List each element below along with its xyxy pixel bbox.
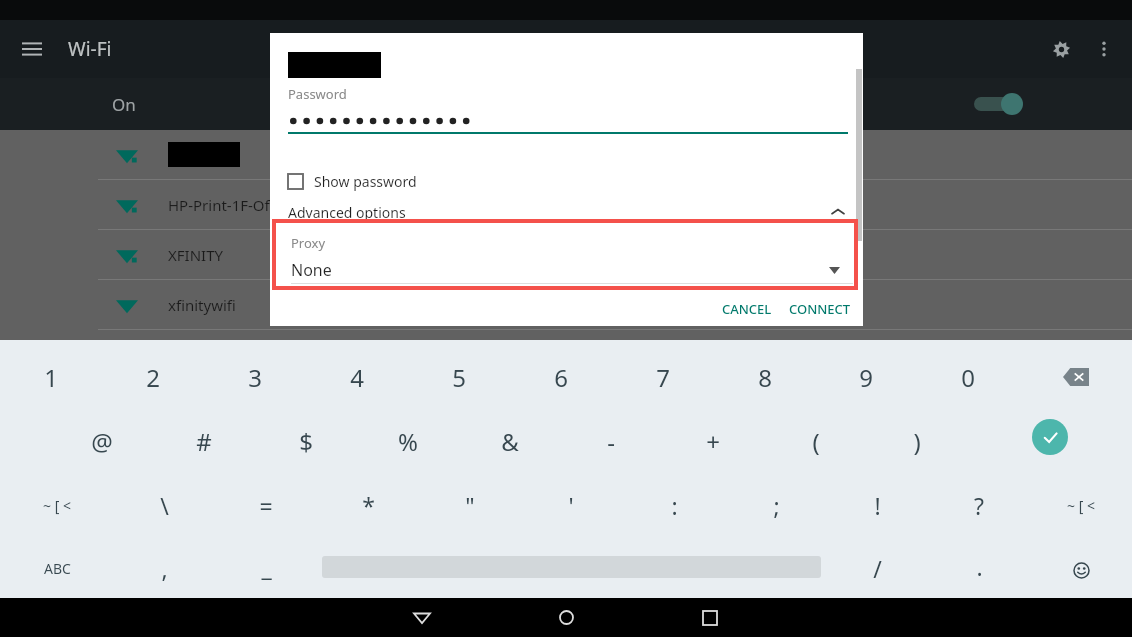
button[interactable]: )	[873, 415, 961, 467]
staticText: ~ [ <	[1067, 496, 1095, 515]
staticText: HP-Print-1F-Offi	[168, 195, 279, 215]
staticText: \	[160, 490, 169, 521]
staticText: 7	[656, 361, 670, 394]
staticText: '	[568, 490, 574, 521]
staticText: $	[299, 425, 313, 458]
staticText: *	[362, 490, 375, 521]
staticText: 0	[961, 361, 975, 394]
button[interactable]: 4	[313, 351, 401, 403]
button[interactable]: :	[630, 479, 718, 531]
button[interactable]: Settings	[1041, 29, 1081, 69]
button[interactable]: Back	[400, 598, 444, 637]
staticText: xfinitywifi	[168, 295, 236, 315]
button[interactable]: @	[58, 415, 146, 467]
staticText: 3	[248, 361, 262, 394]
button[interactable]: 3	[211, 351, 299, 403]
button[interactable]: 0	[924, 351, 1012, 403]
staticText: @	[91, 425, 113, 458]
button[interactable]: ABC	[13, 542, 101, 594]
button[interactable]: CONNECT	[783, 294, 857, 324]
staticText: Wi-Fi	[68, 36, 112, 62]
staticText: Password	[288, 85, 347, 103]
staticText: .	[976, 551, 983, 582]
button[interactable]: 8	[721, 351, 809, 403]
staticText: )	[913, 425, 921, 458]
button[interactable]: ,	[120, 542, 208, 594]
staticText: ABC	[44, 559, 71, 578]
button[interactable]: Enter	[1032, 419, 1068, 455]
staticText: 5	[452, 361, 466, 394]
button[interactable]: Home	[544, 598, 588, 637]
button[interactable]: CANCEL	[713, 294, 781, 324]
staticText: CONNECT	[789, 300, 851, 318]
button[interactable]: 6	[517, 351, 605, 403]
staticText: &	[501, 425, 519, 458]
button[interactable]: None	[291, 257, 840, 283]
button[interactable]: ~ [ <	[13, 479, 101, 531]
staticText: "	[465, 490, 475, 521]
button[interactable]: ~ [ <	[1037, 479, 1125, 531]
button[interactable]: HP-Print-1F-Offi	[0, 180, 1132, 229]
button[interactable]: 1	[7, 351, 95, 403]
button[interactable]: /	[833, 542, 921, 594]
staticText: -	[607, 425, 615, 458]
staticText: %	[398, 425, 418, 458]
button[interactable]: xfinitywifi	[0, 280, 1132, 329]
staticText: Show password	[314, 172, 417, 191]
staticText: /	[873, 553, 882, 584]
button[interactable]: Recent apps	[688, 598, 732, 637]
staticText: 2	[146, 361, 160, 394]
staticText: #	[196, 425, 212, 458]
staticText: =	[259, 490, 273, 521]
button[interactable]: Emoji	[1062, 554, 1100, 586]
button[interactable]: Advanced options	[288, 199, 845, 225]
button[interactable]: Navigation drawer	[14, 31, 50, 67]
button[interactable]: More options	[1084, 29, 1124, 69]
button[interactable]: =	[222, 479, 310, 531]
button[interactable]	[0, 130, 1132, 179]
button[interactable]: "	[426, 479, 514, 531]
button[interactable]: XFINITY	[0, 230, 1132, 279]
button[interactable]: &	[466, 415, 554, 467]
button[interactable]: Show password	[288, 167, 417, 195]
staticText: ;	[773, 490, 780, 521]
staticText: 1	[44, 361, 58, 394]
button[interactable]: #	[160, 415, 248, 467]
staticText: ?	[974, 490, 984, 521]
staticText: :	[671, 490, 678, 521]
staticText: None	[291, 259, 332, 281]
button[interactable]: .	[935, 540, 1023, 592]
button[interactable]: !	[833, 479, 921, 531]
button[interactable]: %	[364, 415, 452, 467]
staticText: 9	[859, 361, 873, 394]
button[interactable]: Wi-Fi toggle	[972, 87, 1024, 121]
button[interactable]: -	[567, 415, 655, 467]
staticText: CANCEL	[722, 300, 772, 318]
button[interactable]: +	[669, 415, 757, 467]
button[interactable]: *	[324, 479, 412, 531]
button[interactable]: 5	[415, 351, 503, 403]
button[interactable]: '	[527, 479, 615, 531]
button[interactable]: (	[772, 415, 860, 467]
staticText: _	[261, 551, 272, 582]
button[interactable]: 2	[109, 351, 197, 403]
button[interactable]: 7	[619, 351, 707, 403]
staticText: !	[874, 490, 881, 521]
button[interactable]: ?	[935, 479, 1023, 531]
button[interactable]: 9	[822, 351, 910, 403]
button[interactable]: _	[222, 540, 310, 592]
button[interactable]: $	[262, 415, 350, 467]
staticText: +	[706, 425, 720, 458]
button[interactable]: Backspace	[1040, 355, 1112, 399]
staticText: ,	[161, 553, 168, 584]
staticText: ~ [ <	[43, 496, 71, 515]
button[interactable]: \	[120, 479, 208, 531]
staticText: XFINITY	[168, 245, 223, 265]
staticText: Advanced options	[288, 203, 406, 222]
staticText: 6	[554, 361, 568, 394]
staticText: (	[812, 425, 820, 458]
staticText: On	[112, 93, 136, 116]
staticText: Proxy	[291, 234, 326, 252]
button[interactable]: ;	[732, 479, 820, 531]
